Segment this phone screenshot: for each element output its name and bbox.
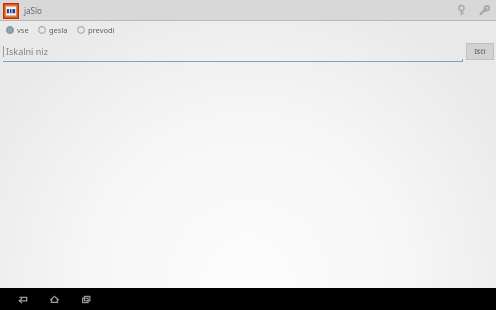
button[interactable]: Recents — [74, 288, 98, 310]
button[interactable]: Home — [42, 288, 66, 310]
button[interactable]: gesla — [37, 23, 69, 37]
staticText: vse — [17, 25, 29, 35]
button[interactable]: vse — [5, 23, 30, 37]
button[interactable]: Iskalni niz — [3, 40, 463, 62]
button[interactable]: prevodi — [76, 23, 116, 37]
staticText: gesla — [49, 25, 68, 35]
button[interactable]: Išči — [466, 43, 494, 60]
staticText: Išči — [474, 47, 486, 57]
staticText: prevodi — [88, 25, 115, 35]
button[interactable]: Gesla — [450, 0, 472, 21]
button[interactable]: Nastavitve — [472, 0, 496, 21]
button[interactable]: Back — [10, 288, 34, 310]
staticText: jaSlo — [24, 5, 42, 16]
staticText: Iskalni niz — [6, 45, 48, 57]
